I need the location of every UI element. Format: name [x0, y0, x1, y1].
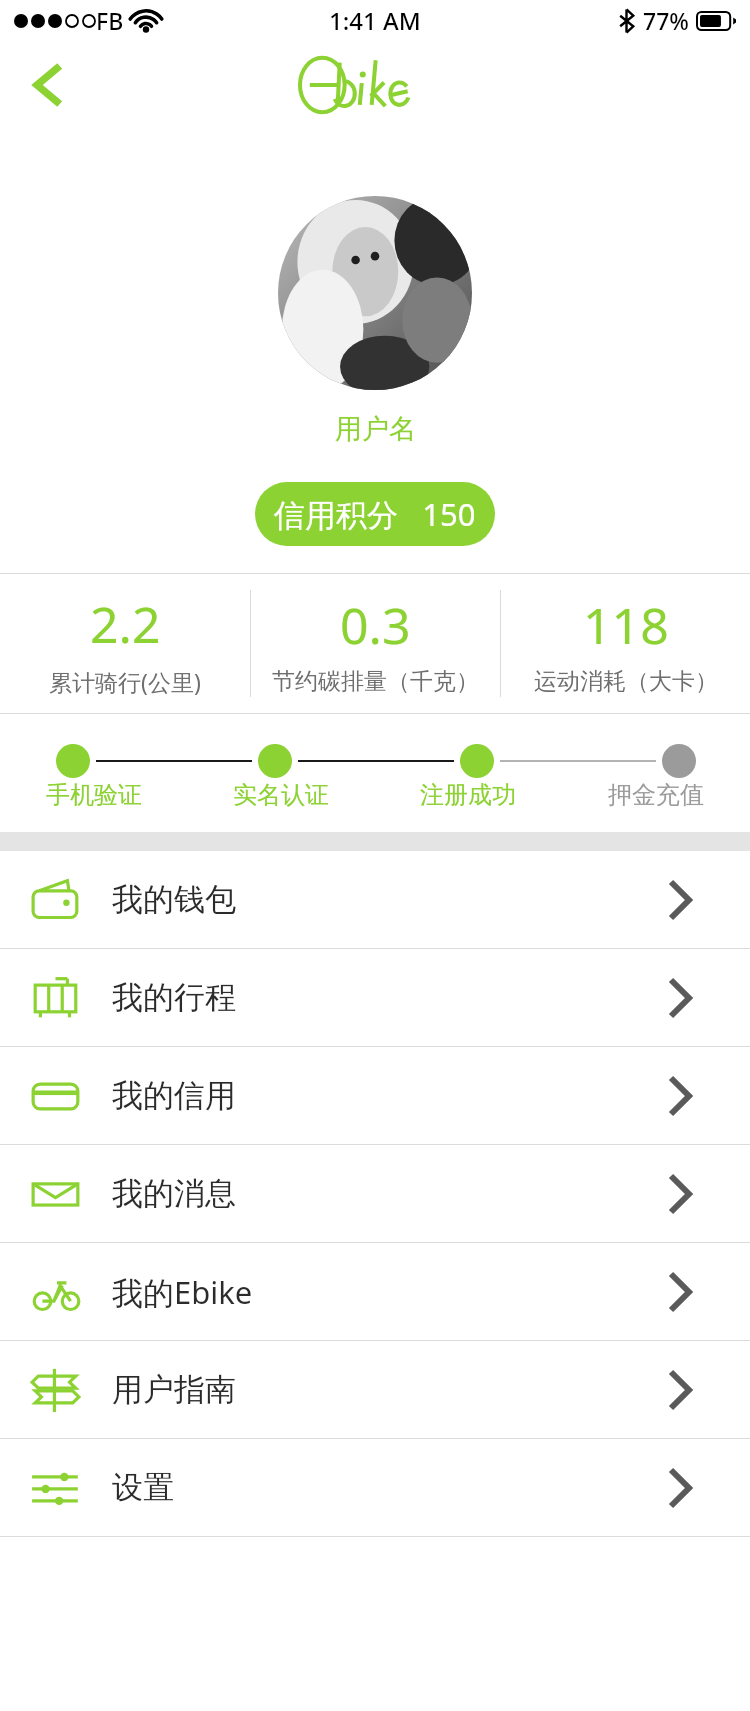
staticText: 运动消耗（大卡） — [534, 667, 718, 696]
staticText: 我的Ebike — [112, 1271, 253, 1313]
button[interactable]: 2.2 — [0, 574, 250, 713]
button[interactable]: 0.3 — [251, 574, 500, 713]
button[interactable]: 设置 — [0, 1439, 750, 1536]
button[interactable]: 手机验证 — [0, 780, 187, 810]
staticText: 信用积分 150 — [274, 493, 476, 535]
button[interactable]: 信用积分 150 — [255, 482, 495, 546]
staticText: 我的消息 — [112, 1174, 236, 1213]
button[interactable]: 用户指南 — [0, 1341, 750, 1438]
staticText: 我的信用 — [112, 1076, 236, 1115]
button[interactable]: 我的钱包 — [0, 851, 750, 948]
staticText: 2.2 — [90, 590, 161, 658]
button[interactable]: 注册成功 — [374, 780, 562, 810]
button[interactable]: Profile photo — [278, 196, 472, 390]
staticText: 手机验证 — [46, 780, 142, 810]
staticText: 用户指南 — [112, 1370, 236, 1409]
staticText: 我的钱包 — [112, 880, 236, 919]
staticText: 设置 — [112, 1468, 174, 1507]
button[interactable]: 实名认证 — [187, 780, 374, 810]
button[interactable]: 我的行程 — [0, 949, 750, 1046]
staticText: 实名认证 — [233, 780, 329, 810]
button[interactable]: 我的信用 — [0, 1047, 750, 1144]
staticText: 注册成功 — [420, 780, 516, 810]
staticText: 押金充值 — [608, 780, 704, 810]
staticText: 77% — [643, 5, 689, 36]
staticText: 累计骑行(公里) — [49, 666, 201, 697]
button[interactable]: Back — [18, 55, 78, 115]
button[interactable]: 118 — [501, 574, 750, 713]
button[interactable]: 我的消息 — [0, 1145, 750, 1242]
staticText: 0.3 — [340, 591, 411, 659]
staticText: 用户名 — [335, 412, 416, 446]
button[interactable]: 押金充值 — [562, 780, 750, 810]
staticText: 118 — [583, 591, 669, 659]
staticText: 我的行程 — [112, 978, 236, 1017]
staticText: 节约碳排量（千克） — [272, 667, 479, 696]
button[interactable]: 我的Ebike — [0, 1243, 750, 1340]
staticText: 1:41 AM — [329, 4, 421, 37]
staticText: FB — [96, 5, 124, 36]
